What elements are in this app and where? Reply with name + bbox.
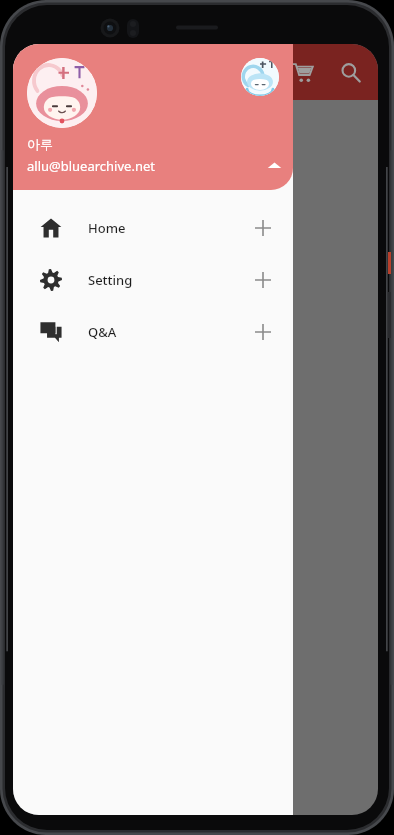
- button[interactable]: Collapse account list: [257, 148, 291, 182]
- button[interactable]: Expand Q&A: [241, 310, 285, 354]
- button[interactable]: Home: [13, 202, 293, 254]
- button[interactable]: Cart: [278, 48, 326, 96]
- staticText: Home: [88, 219, 126, 237]
- button[interactable]: Expand Home: [241, 206, 285, 250]
- button[interactable]: Search: [326, 48, 374, 96]
- button[interactable]: Switch account: [241, 58, 279, 96]
- staticText: Setting: [88, 271, 133, 289]
- staticText: allu@bluearchive.net: [27, 157, 155, 175]
- button[interactable]: Setting: [13, 254, 293, 306]
- button[interactable]: Expand Setting: [241, 258, 285, 302]
- button[interactable]: Profile picture: [13, 44, 293, 190]
- button[interactable]: Profile picture: [27, 58, 97, 128]
- button[interactable]: Q&A: [13, 306, 293, 358]
- staticText: Q&A: [88, 323, 117, 341]
- staticText: 아루: [27, 136, 53, 152]
